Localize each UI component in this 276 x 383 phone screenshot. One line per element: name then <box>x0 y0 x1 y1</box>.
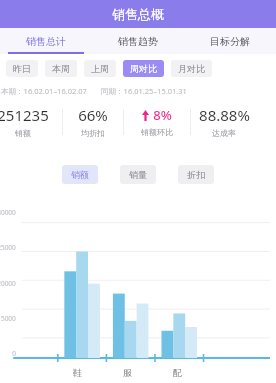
button[interactable]: 销额 <box>62 165 98 184</box>
staticText: 服 <box>123 367 132 378</box>
button[interactable]: 88.88% <box>191 105 257 138</box>
staticText: 销售总计 <box>26 35 66 48</box>
staticText: 周对比 <box>130 63 157 74</box>
staticText: 销额 <box>15 128 31 138</box>
staticText: 88.88% <box>199 105 250 125</box>
staticText: 30000 <box>0 208 16 217</box>
staticText: 8% <box>153 106 172 124</box>
staticText: 均折扣 <box>81 128 105 138</box>
button[interactable]: 销售趋势 <box>92 28 184 54</box>
staticText: 折扣 <box>187 169 205 180</box>
button[interactable]: Increase <box>124 106 190 137</box>
button[interactable]: 目标分解 <box>184 28 276 54</box>
staticText: 销售总概 <box>112 6 164 22</box>
staticText: 目标分解 <box>210 35 250 48</box>
staticText: 15000 <box>0 314 16 323</box>
staticText: 本期：16.02.01–16.02.07 <box>1 86 87 96</box>
staticText: 销额 <box>71 169 89 180</box>
button[interactable]: 销售总计 <box>0 28 92 54</box>
button[interactable]: 66% <box>63 105 123 138</box>
button[interactable]: 上周 <box>84 60 116 77</box>
button[interactable]: 折扣 <box>178 165 214 184</box>
staticText: 20000 <box>0 279 16 288</box>
button[interactable]: 月对比 <box>171 60 212 77</box>
staticText: 251235 <box>0 105 49 125</box>
button[interactable]: 251235 <box>0 105 54 138</box>
staticText: 66% <box>78 105 108 125</box>
staticText: 销量 <box>129 169 147 180</box>
staticText: 同期：16.01.25–15.01.31 <box>101 86 187 96</box>
staticText: 配 <box>173 367 182 378</box>
staticText: 达成率 <box>212 128 236 138</box>
staticText: 鞋 <box>73 367 82 378</box>
staticText: 月对比 <box>178 63 205 74</box>
staticText: 0 <box>12 349 16 358</box>
button[interactable]: 本周 <box>45 60 77 77</box>
staticText: 上周 <box>91 63 109 74</box>
button[interactable]: 昨日 <box>6 60 38 77</box>
other: Increase <box>142 110 149 121</box>
staticText: 25000 <box>0 243 16 252</box>
button[interactable]: 周对比 <box>123 60 164 77</box>
staticText: 昨日 <box>13 63 31 74</box>
button[interactable]: 销量 <box>120 165 156 184</box>
staticText: 本周 <box>52 63 70 74</box>
staticText: 销售趋势 <box>118 35 158 48</box>
staticText: 销额环比 <box>141 127 173 137</box>
